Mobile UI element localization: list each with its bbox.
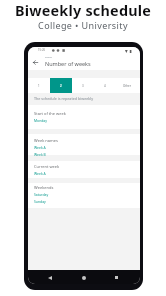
button[interactable]: 3 bbox=[72, 78, 94, 93]
button[interactable]: Recent apps bbox=[113, 274, 120, 281]
button[interactable]: 4 bbox=[94, 78, 116, 93]
staticText: 2 bbox=[60, 84, 62, 88]
staticText: Biweekly schedule bbox=[0, 1, 166, 21]
staticText: Week A bbox=[34, 171, 46, 176]
staticText: Other bbox=[123, 84, 131, 88]
staticText: Start of the week bbox=[34, 111, 66, 116]
staticText: Current week bbox=[34, 164, 60, 169]
staticText: School bbox=[45, 56, 52, 59]
staticText: Number of weeks bbox=[45, 60, 91, 67]
staticText: The schedule is repeated biweekly bbox=[34, 96, 94, 101]
staticText: Saturday bbox=[34, 192, 49, 197]
button[interactable]: Start of the week bbox=[28, 105, 140, 129]
staticText: 15:26 bbox=[38, 48, 46, 52]
staticText: Week A bbox=[34, 145, 46, 150]
button[interactable]: Weekends bbox=[28, 183, 140, 208]
staticText: College • University bbox=[0, 19, 166, 31]
staticText: Monday bbox=[34, 118, 47, 123]
button[interactable]: 2 bbox=[50, 78, 72, 93]
staticText: Weekends bbox=[34, 185, 54, 190]
staticText: Week names bbox=[34, 138, 58, 143]
staticText: Sunday bbox=[34, 199, 46, 204]
staticText: 3 bbox=[82, 84, 84, 88]
button[interactable]: 1 bbox=[28, 78, 50, 93]
staticText: 1 bbox=[38, 84, 40, 88]
button[interactable]: Back bbox=[29, 56, 42, 69]
staticText: Week B bbox=[34, 152, 46, 157]
button[interactable]: Other bbox=[116, 78, 138, 93]
staticText: 4 bbox=[104, 84, 106, 88]
button[interactable]: Home bbox=[80, 274, 87, 281]
button[interactable]: Current week bbox=[28, 161, 140, 178]
button[interactable]: Back bbox=[46, 274, 53, 281]
button[interactable]: Week names bbox=[28, 134, 140, 155]
